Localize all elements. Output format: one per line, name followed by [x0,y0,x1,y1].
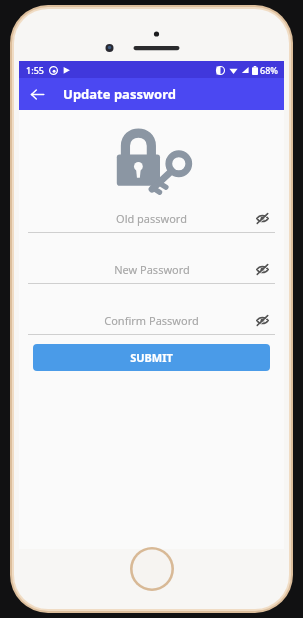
staticText: Update password [63,85,176,103]
staticText: 1:55 [26,64,44,76]
button[interactable]: New Password [28,259,275,284]
button[interactable]: Toggle password visibility [253,209,271,227]
staticText: Confirm Password [104,313,199,328]
button[interactable]: Toggle password visibility [253,260,271,278]
button[interactable]: Back [23,80,51,108]
button[interactable]: Old password [28,208,275,233]
button[interactable]: Confirm Password [28,310,275,335]
staticText: New Password [114,262,190,277]
button[interactable]: SUBMIT [33,344,270,371]
button[interactable]: Toggle password visibility [253,311,271,329]
staticText: SUBMIT [130,350,173,365]
staticText: Old password [116,211,187,226]
staticText: 68% [260,64,278,76]
